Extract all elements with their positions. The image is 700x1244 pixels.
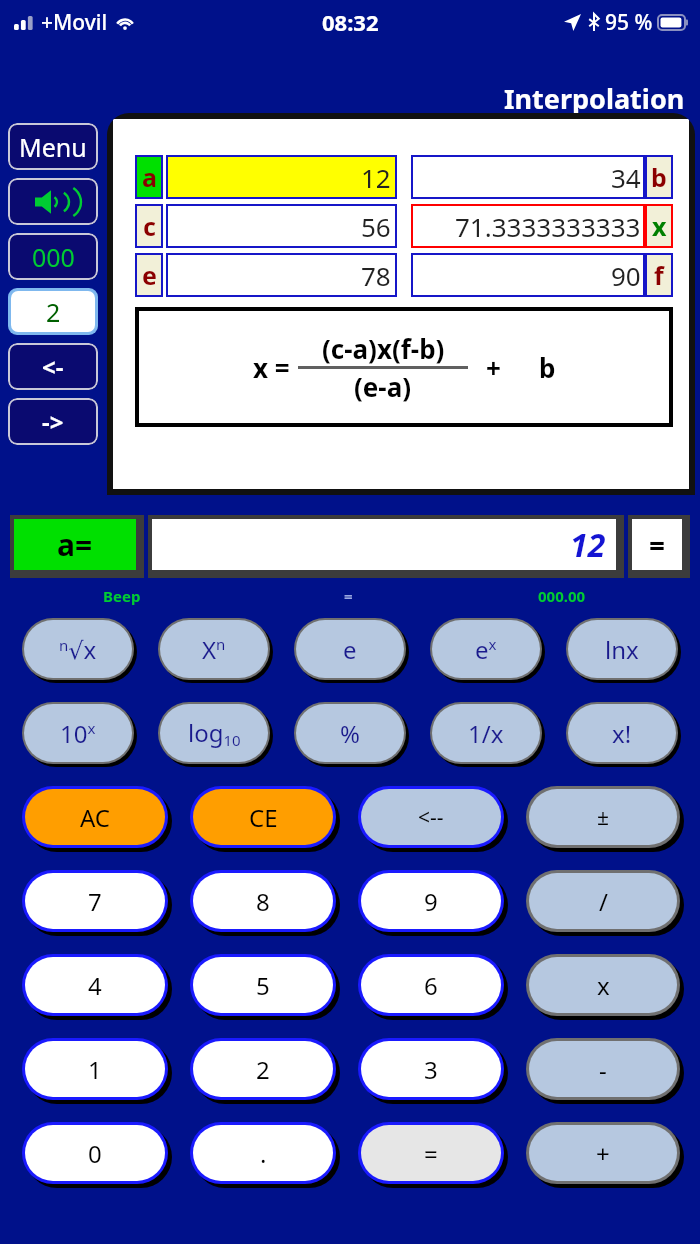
button[interactable]: log10	[160, 704, 268, 762]
staticText: (c-a)x(f-b)	[322, 331, 445, 366]
staticText: %	[340, 717, 360, 750]
staticText: 90	[611, 258, 641, 293]
button[interactable]: 3	[361, 1041, 501, 1097]
button[interactable]: a=	[14, 519, 136, 570]
staticText: 08:32	[322, 7, 379, 37]
staticText: f	[654, 258, 664, 292]
staticText: 7	[88, 885, 102, 918]
button[interactable]: Xn	[160, 620, 268, 678]
button[interactable]: /	[529, 873, 677, 929]
button[interactable]: n√x	[24, 620, 132, 678]
button[interactable]: 71.3333333333	[411, 204, 645, 248]
button[interactable]: 000	[8, 233, 98, 280]
staticText: /	[599, 885, 608, 918]
staticText: Xn	[202, 633, 226, 666]
staticText: c	[143, 209, 156, 243]
button[interactable]: a	[135, 155, 163, 199]
button[interactable]: <-	[8, 343, 98, 390]
button[interactable]: 2	[193, 1041, 333, 1097]
button[interactable]: AC	[25, 789, 165, 845]
staticText: a	[142, 160, 157, 194]
button[interactable]: x!	[568, 704, 676, 762]
staticText: ex	[475, 633, 497, 666]
staticText: 10x	[60, 717, 96, 750]
staticText: a=	[57, 524, 93, 565]
staticText: <-	[42, 350, 64, 383]
button[interactable]: .	[193, 1125, 333, 1181]
staticText: 9	[424, 885, 438, 918]
staticText: -	[599, 1053, 607, 1086]
button[interactable]: 7	[25, 873, 165, 929]
staticText: ±	[597, 803, 610, 832]
button[interactable]: 6	[361, 957, 501, 1013]
button[interactable]: %	[296, 704, 404, 762]
staticText: lnx	[605, 633, 639, 666]
staticText: 56	[361, 209, 391, 244]
button[interactable]: e	[135, 253, 163, 297]
button[interactable]: <--	[361, 789, 501, 845]
button[interactable]: lnx	[568, 620, 676, 678]
button[interactable]: =	[361, 1125, 501, 1181]
button[interactable]: 4	[25, 957, 165, 1013]
button[interactable]: x	[529, 957, 677, 1013]
staticText: 3	[424, 1053, 438, 1086]
staticText: 4	[88, 969, 102, 1002]
staticText: CE	[249, 801, 278, 834]
button[interactable]: 56	[166, 204, 397, 248]
button[interactable]: 0	[25, 1125, 165, 1181]
button[interactable]: 2	[11, 291, 95, 332]
staticText: x	[652, 209, 667, 243]
staticText: <--	[418, 803, 444, 832]
button[interactable]: f	[645, 253, 673, 297]
button[interactable]: 8	[193, 873, 333, 929]
button[interactable]: c	[135, 204, 163, 248]
button[interactable]: 34	[411, 155, 645, 199]
staticText: e	[343, 633, 357, 666]
staticText: b	[651, 160, 667, 194]
button[interactable]: Menu	[8, 123, 98, 170]
button[interactable]: ex	[432, 620, 540, 678]
staticText: 8	[256, 885, 270, 918]
button[interactable]: CE	[193, 789, 333, 845]
staticText: 6	[424, 969, 438, 1002]
staticText: ->	[42, 405, 64, 438]
staticText: x!	[612, 717, 632, 750]
button[interactable]: 12	[152, 519, 616, 570]
button[interactable]: =	[632, 519, 682, 570]
staticText: +	[596, 1137, 610, 1170]
button[interactable]: 9	[361, 873, 501, 929]
staticText: 0	[88, 1137, 102, 1170]
button[interactable]: ->	[8, 398, 98, 445]
button[interactable]: 90	[411, 253, 645, 297]
button[interactable]: 5	[193, 957, 333, 1013]
staticText: AC	[80, 801, 111, 834]
button[interactable]: 12	[166, 155, 397, 199]
button[interactable]: +	[529, 1125, 677, 1181]
button[interactable]: -	[529, 1041, 677, 1097]
button[interactable]: ±	[529, 789, 677, 845]
staticText: 95 %	[605, 8, 653, 37]
button[interactable]: 10x	[24, 704, 132, 762]
staticText: (e-a)	[354, 369, 412, 404]
staticText: e	[142, 258, 157, 292]
button[interactable]: 78	[166, 253, 397, 297]
button[interactable]: Sound	[8, 178, 98, 225]
staticText: 78	[361, 258, 391, 293]
staticText: 1/x	[468, 717, 504, 750]
staticText: =	[649, 526, 666, 564]
button[interactable]: b	[645, 155, 673, 199]
button[interactable]: 1	[25, 1041, 165, 1097]
staticText: =	[344, 586, 353, 606]
staticText: Menu	[19, 130, 87, 164]
staticText: b	[539, 350, 556, 385]
staticText: 34	[611, 160, 641, 195]
button[interactable]: x	[645, 204, 673, 248]
staticText: 000.00	[538, 586, 586, 606]
staticText: x	[597, 969, 610, 1002]
staticText: 1	[88, 1053, 102, 1086]
staticText: +	[486, 350, 501, 385]
staticText: 2	[46, 295, 61, 329]
button[interactable]: e	[296, 620, 404, 678]
button[interactable]: 1/x	[432, 704, 540, 762]
staticText: +Movil	[41, 8, 108, 37]
